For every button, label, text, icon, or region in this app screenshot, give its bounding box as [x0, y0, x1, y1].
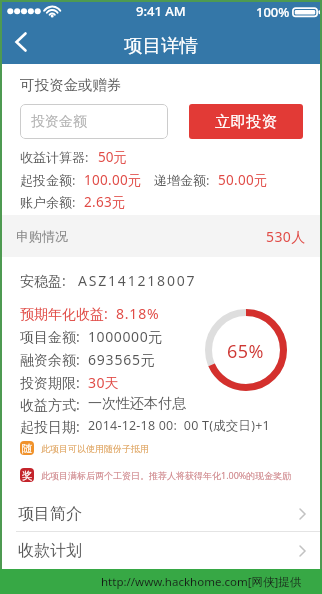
staticText: 收款计划: [18, 541, 82, 561]
staticText: http://www.hackhome.com[网侠]提供: [101, 574, 302, 590]
staticText: 奖: [22, 469, 33, 482]
staticText: 50元: [98, 148, 127, 166]
staticText: 1000000元: [88, 327, 163, 346]
staticText: 65%: [227, 339, 265, 364]
staticText: 起投金额:: [20, 171, 76, 189]
staticText: 投资金额: [31, 113, 87, 131]
staticText: 此项目可以使用随份子抵用: [41, 443, 149, 454]
staticText: 融资余额:: [20, 350, 80, 369]
staticText: 立即投资: [215, 112, 277, 132]
staticText: 投资期限:: [20, 373, 80, 392]
staticText: 账户余额:: [20, 193, 76, 211]
staticText: 递增金额:: [154, 171, 210, 189]
staticText: 起投日期:: [20, 417, 80, 436]
staticText: 安稳盈:: [20, 271, 66, 290]
staticText: 此项目满标后两个工资日。推荐人将获得年化1.00%的现金奖励: [41, 469, 292, 481]
staticText: 30天: [88, 373, 120, 392]
staticText: 9:41 AM: [136, 2, 186, 20]
button[interactable]: 立即投资: [189, 104, 303, 139]
staticText: 2014-12-18 00: 00 T(成交日)+1: [88, 417, 270, 434]
staticText: ASZ141218007: [78, 271, 197, 290]
staticText: 项目简介: [18, 504, 82, 524]
button[interactable]: 投资金额: [20, 104, 168, 139]
staticText: 预期年化收益:: [20, 304, 108, 323]
staticText: 693565元: [88, 350, 156, 369]
staticText: 100%: [256, 3, 290, 21]
staticText: 收益方式:: [20, 395, 80, 414]
button[interactable]: 收款计划: [0, 532, 322, 569]
staticText: 项目详情: [124, 34, 198, 57]
staticText: 一次性还本付息: [88, 395, 186, 413]
staticText: 530人: [266, 227, 306, 246]
staticText: 8.18%: [116, 304, 160, 323]
staticText: 100.00元: [84, 171, 142, 189]
staticText: 项目金额:: [20, 327, 80, 346]
button[interactable]: 项目简介: [0, 495, 322, 532]
staticText: 可投资金或赠券: [20, 76, 122, 94]
button[interactable]: Back: [0, 20, 42, 64]
staticText: 收益计算器:: [20, 148, 89, 166]
staticText: 随: [22, 442, 33, 455]
staticText: 申购情况: [16, 228, 68, 244]
staticText: 2.63元: [84, 193, 126, 211]
staticText: 50.00元: [218, 171, 268, 189]
